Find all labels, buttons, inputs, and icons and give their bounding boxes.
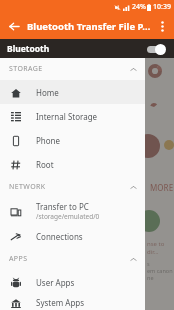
staticText: Connections — [36, 231, 83, 242]
staticText: STORAGE — [9, 64, 43, 74]
staticText: Root — [36, 159, 54, 170]
staticText: Bluetooth Transfer File P… — [27, 20, 151, 33]
staticText: User Apps — [36, 277, 75, 288]
staticText: nse to dir… — [147, 240, 174, 256]
staticText: Transfer to PC — [36, 201, 89, 212]
button[interactable]: User Apps — [0, 270, 145, 294]
staticText: Phone — [36, 135, 61, 146]
staticText: 24% — [132, 2, 146, 12]
staticText: Home — [36, 87, 59, 98]
staticText: System Apps — [36, 297, 85, 308]
staticText: Bluetooth — [7, 43, 50, 55]
button[interactable]: NETWORK — [0, 176, 145, 198]
button[interactable]: More options — [154, 18, 170, 34]
staticText: ne — [147, 274, 154, 281]
button[interactable]: Root — [0, 152, 145, 176]
staticText: NETWORK — [9, 182, 46, 192]
button[interactable]: Phone — [0, 128, 145, 152]
staticText: 10:39 — [153, 2, 171, 12]
button[interactable]: Bluetooth toggle — [145, 42, 167, 56]
staticText: s — [147, 260, 150, 267]
button[interactable]: System Apps — [0, 294, 145, 310]
staticText: em canon — [147, 267, 173, 274]
button[interactable]: Connections — [0, 224, 145, 248]
button[interactable]: Home — [0, 80, 145, 104]
staticText: APPS — [9, 254, 28, 264]
button[interactable]: Bluetooth — [0, 39, 174, 58]
button[interactable]: STORAGE — [0, 58, 145, 80]
button[interactable]: Internal Storage — [0, 104, 145, 128]
button[interactable]: Back — [5, 17, 23, 35]
staticText: /storage/emulated/0 — [36, 212, 100, 221]
button[interactable]: Transfer to PC — [0, 198, 145, 224]
staticText: MORE — [150, 182, 174, 193]
staticText: Internal Storage — [36, 111, 98, 122]
button[interactable]: APPS — [0, 248, 145, 270]
